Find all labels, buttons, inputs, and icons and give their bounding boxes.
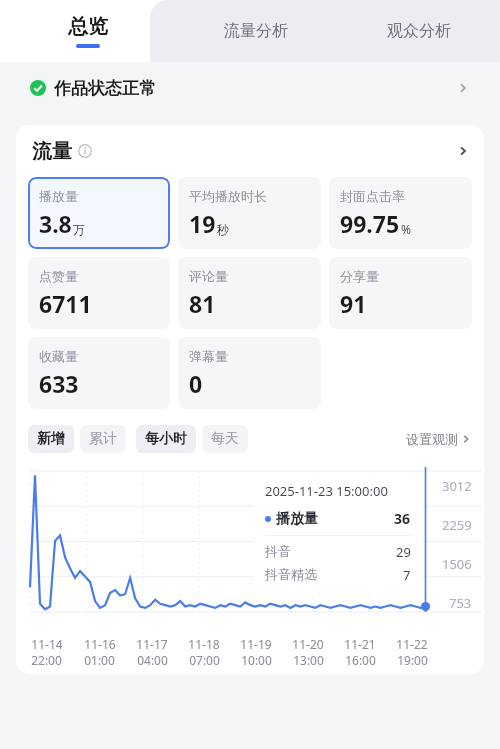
- staticText: 19: [189, 208, 216, 239]
- staticText: 每小时: [145, 430, 187, 448]
- staticText: 11-16: [84, 636, 116, 652]
- staticText: 抖音精选: [265, 566, 317, 582]
- staticText: %: [401, 221, 411, 237]
- staticText: 11-22: [396, 636, 428, 652]
- staticText: 04:00: [137, 652, 168, 668]
- button[interactable]: 每天: [202, 425, 248, 453]
- staticText: 每天: [211, 430, 239, 448]
- staticText: 设置观测: [406, 431, 458, 447]
- button[interactable]: 累计: [80, 425, 126, 453]
- staticText: 1506: [442, 555, 472, 573]
- staticText: 播放量: [39, 188, 78, 204]
- staticText: 总览: [68, 14, 108, 39]
- staticText: 作品状态正常: [54, 78, 156, 99]
- staticText: 13:00: [293, 652, 324, 668]
- staticText: 播放量: [276, 510, 318, 528]
- button[interactable]: 设置观测: [406, 431, 472, 447]
- button[interactable]: 弹幕量: [178, 337, 321, 409]
- staticText: 01:00: [84, 652, 115, 668]
- staticText: 收藏量: [39, 348, 78, 364]
- staticText: 6711: [39, 288, 92, 319]
- staticText: 3.8: [39, 208, 72, 239]
- button[interactable]: 收藏量: [28, 337, 170, 409]
- staticText: 3012: [442, 477, 472, 495]
- button[interactable]: 作品状态正常: [0, 62, 500, 114]
- staticText: 99.75: [340, 208, 400, 239]
- staticText: 07:00: [189, 652, 220, 668]
- button[interactable]: 观众分析: [337, 0, 500, 62]
- button[interactable]: 流量分析: [175, 0, 337, 62]
- button[interactable]: 评论量: [178, 257, 321, 329]
- staticText: 点赞量: [39, 268, 78, 284]
- staticText: 7: [403, 566, 411, 584]
- staticText: 11-19: [240, 636, 272, 652]
- staticText: 91: [340, 288, 367, 319]
- staticText: 11-20: [292, 636, 324, 652]
- staticText: 633: [39, 368, 79, 399]
- staticText: 19:00: [397, 652, 428, 668]
- staticText: 2259: [442, 516, 472, 534]
- staticText: 累计: [89, 430, 117, 448]
- staticText: 11-17: [136, 636, 168, 652]
- staticText: 观众分析: [387, 21, 451, 41]
- button[interactable]: 每小时: [136, 425, 196, 453]
- button[interactable]: 分享量: [329, 257, 472, 329]
- staticText: 11-21: [344, 636, 376, 652]
- staticText: 0: [189, 368, 203, 399]
- staticText: 秒: [217, 222, 229, 237]
- staticText: 81: [189, 288, 216, 319]
- button[interactable]: 封面点击率: [329, 177, 472, 249]
- staticText: 11-14: [31, 636, 63, 652]
- button[interactable]: 点赞量: [28, 257, 170, 329]
- staticText: 29: [396, 543, 411, 561]
- button[interactable]: 总览: [0, 0, 175, 62]
- staticText: 流量分析: [224, 21, 288, 41]
- staticText: 753: [449, 594, 472, 612]
- staticText: 抖音: [265, 543, 291, 559]
- button[interactable]: 流量: [16, 125, 484, 177]
- staticText: 11-18: [188, 636, 220, 652]
- staticText: 新增: [37, 430, 65, 448]
- staticText: 16:00: [345, 652, 376, 668]
- staticText: 弹幕量: [189, 348, 228, 364]
- staticText: 万: [73, 222, 85, 237]
- staticText: 封面点击率: [340, 188, 405, 204]
- button[interactable]: 新增: [28, 425, 74, 453]
- staticText: 10:00: [241, 652, 272, 668]
- staticText: 分享量: [340, 268, 379, 284]
- staticText: 2025-11-23 15:00:00: [265, 482, 388, 500]
- staticText: 平均播放时长: [189, 188, 267, 204]
- button[interactable]: 平均播放时长: [178, 177, 321, 249]
- staticText: 评论量: [189, 268, 228, 284]
- button[interactable]: 播放量: [28, 177, 170, 249]
- staticText: 22:00: [31, 652, 62, 668]
- staticText: 流量: [32, 139, 72, 164]
- staticText: 36: [394, 509, 411, 528]
